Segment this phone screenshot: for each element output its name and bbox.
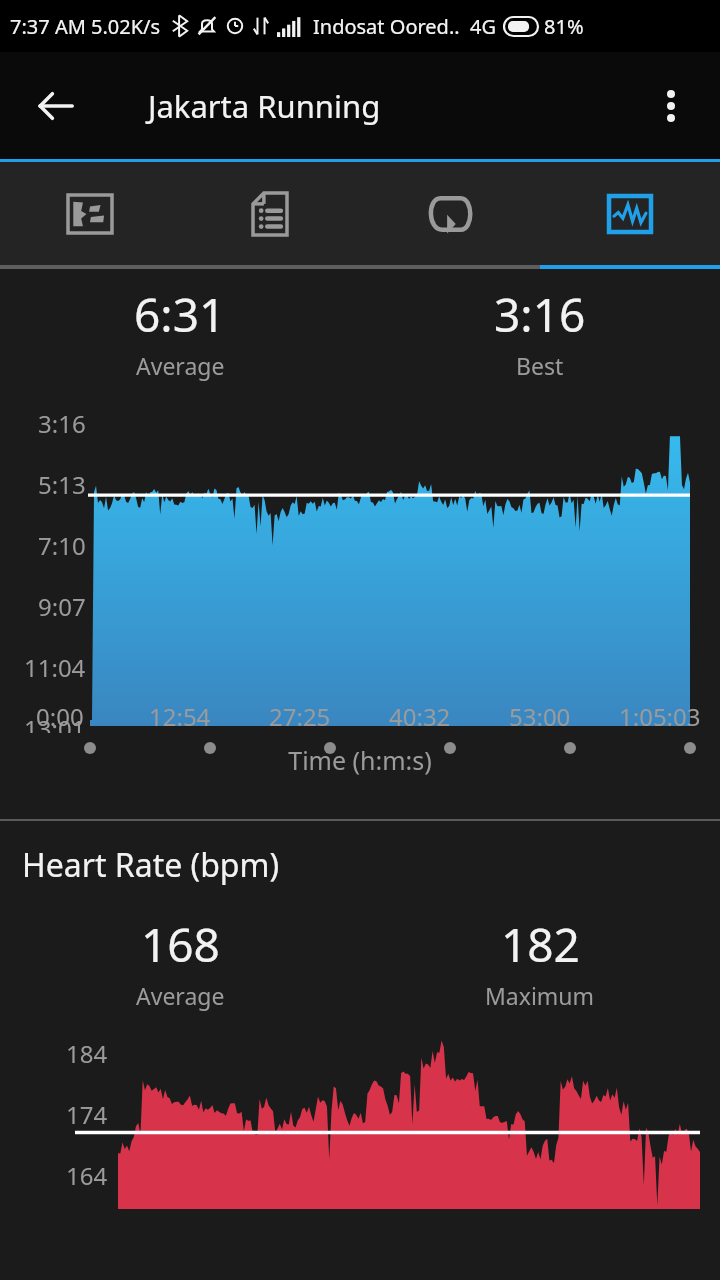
staticText: 11:04 <box>24 651 86 684</box>
staticText: 7:37 AM 5.02K/s <box>10 13 161 40</box>
staticText: 174 <box>66 1098 108 1131</box>
staticText: 13:01 <box>24 712 86 733</box>
staticText: 164 <box>66 1159 108 1192</box>
staticText: 184 <box>66 1037 108 1070</box>
staticText: Jakarta Running <box>148 85 381 127</box>
staticText: 6:31 <box>134 283 226 346</box>
staticText: 5:13 <box>38 468 86 501</box>
staticText: 0:00 <box>36 700 84 733</box>
button[interactable]: More options <box>640 75 702 137</box>
staticText: 3:16 <box>38 407 86 440</box>
button[interactable]: Graphs <box>540 162 720 265</box>
staticText: Indosat Oored.. <box>313 13 460 40</box>
button[interactable]: Details <box>180 162 360 265</box>
staticText: 40:32 <box>389 700 451 733</box>
staticText: Heart Rate (bpm) <box>22 843 280 887</box>
staticText: 27:25 <box>269 700 331 733</box>
staticText: Average <box>136 980 225 1011</box>
staticText: 3:16 <box>494 283 586 346</box>
staticText: Average <box>136 350 225 381</box>
staticText: Best <box>516 350 564 381</box>
staticText: 1:05:03 <box>619 700 701 733</box>
button[interactable]: Map <box>0 162 180 265</box>
staticText: 12:54 <box>149 700 211 733</box>
staticText: 168 <box>141 913 220 976</box>
staticText: Maximum <box>485 980 595 1011</box>
staticText: 53:00 <box>509 700 571 733</box>
staticText: 4G <box>470 13 496 40</box>
staticText: 9:07 <box>38 590 86 623</box>
staticText: 7:10 <box>38 529 86 562</box>
button[interactable]: Back <box>22 72 90 140</box>
staticText: 81% <box>544 13 584 40</box>
staticText: Time (h:m:s) <box>0 743 720 777</box>
staticText: 182 <box>501 913 580 976</box>
button[interactable]: Laps <box>360 162 540 265</box>
